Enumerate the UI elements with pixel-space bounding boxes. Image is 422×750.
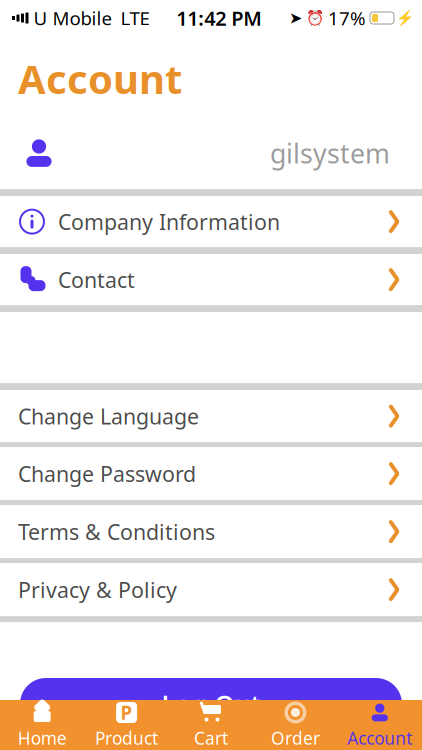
button[interactable]: Contact	[0, 254, 422, 305]
button[interactable]: Change Password	[0, 447, 422, 500]
button[interactable]: Privacy & Policy	[0, 563, 422, 616]
button[interactable]: P	[84, 700, 169, 750]
button[interactable]: Company Information	[0, 196, 422, 247]
staticText: P	[121, 700, 133, 725]
staticText: U Mobile	[33, 6, 112, 30]
button[interactable]: Account	[338, 700, 422, 750]
staticText: 17%	[328, 6, 366, 30]
staticText: Terms & Conditions	[18, 517, 215, 546]
staticText: Account	[18, 52, 182, 105]
button[interactable]: Home	[0, 700, 84, 750]
button[interactable]: Change Language	[0, 390, 422, 442]
staticText: ⚡	[396, 10, 414, 26]
staticText: Company Information	[58, 207, 280, 236]
staticText: Order	[271, 726, 320, 749]
button[interactable]: Order	[253, 700, 338, 750]
button[interactable]: Log Out	[20, 678, 402, 730]
staticText: gilsystem	[270, 135, 390, 171]
staticText: LTE	[120, 6, 149, 30]
staticText: Log Out	[161, 687, 260, 721]
staticText: Cart	[194, 726, 228, 749]
staticText: ➤	[289, 9, 302, 27]
staticText: 11:42 PM	[176, 5, 262, 31]
staticText: Contact	[58, 265, 135, 294]
staticText: Change Language	[18, 402, 199, 430]
staticText: Account	[347, 726, 412, 749]
button[interactable]: Terms & Conditions	[0, 505, 422, 558]
staticText: Product	[95, 726, 158, 749]
button[interactable]: Cart	[169, 700, 253, 750]
staticText: Privacy & Policy	[18, 575, 177, 604]
staticText: Home	[18, 726, 67, 749]
staticText: Change Password	[18, 459, 196, 488]
staticText: ⏰	[306, 10, 324, 26]
